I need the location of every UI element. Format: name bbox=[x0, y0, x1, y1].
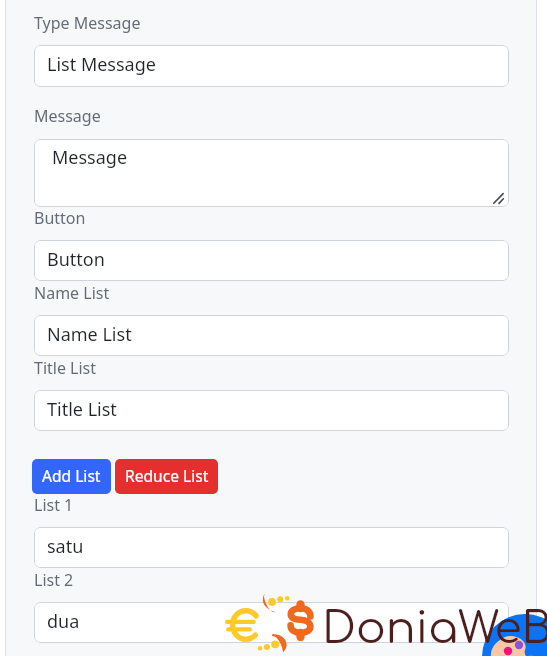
button[interactable]: List Message bbox=[34, 45, 509, 87]
button[interactable]: Button bbox=[34, 240, 509, 281]
button[interactable]: Message bbox=[34, 139, 509, 207]
staticText: Title List bbox=[47, 397, 117, 422]
staticText: Title List bbox=[34, 357, 97, 379]
button[interactable]: Title List bbox=[34, 390, 509, 431]
staticText: DoniaWeB bbox=[322, 604, 547, 653]
staticText: Reduce List bbox=[125, 465, 209, 486]
button[interactable]: Add List bbox=[32, 459, 111, 494]
staticText: List 2 bbox=[34, 569, 74, 591]
staticText: List 1 bbox=[34, 494, 74, 516]
staticText: Button bbox=[34, 207, 86, 229]
button[interactable]: Reduce List bbox=[115, 459, 218, 494]
staticText: Name List bbox=[47, 322, 132, 347]
staticText: Type Message bbox=[34, 12, 141, 34]
staticText: dua bbox=[47, 609, 80, 634]
staticText: Name List bbox=[34, 282, 110, 304]
button[interactable]: satu bbox=[34, 527, 509, 568]
staticText: List Message bbox=[47, 52, 156, 77]
staticText: Add List bbox=[42, 465, 101, 486]
staticText: Message bbox=[52, 145, 128, 170]
button[interactable]: Name List bbox=[34, 315, 509, 356]
button[interactable]: dua bbox=[34, 602, 509, 643]
staticText: Message bbox=[34, 105, 101, 127]
staticText: satu bbox=[47, 534, 84, 559]
staticText: Button bbox=[47, 247, 105, 272]
